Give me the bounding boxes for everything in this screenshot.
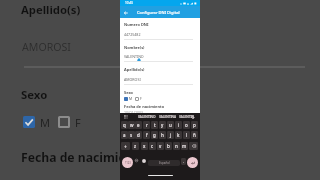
staticText: f (146, 132, 148, 138)
button[interactable]: x (141, 142, 148, 150)
button[interactable]: g (151, 131, 158, 139)
staticText: Nombre(s) (124, 45, 145, 50)
button[interactable]: p (191, 121, 198, 129)
staticText: . (183, 159, 184, 164)
staticText: j (170, 132, 172, 138)
button[interactable]: o (183, 121, 190, 129)
staticText: Fecha de nacimiento (21, 149, 147, 166)
staticText: AMOROSI (22, 40, 71, 54)
staticText: ñ (193, 132, 196, 138)
staticText: F (75, 115, 81, 130)
button[interactable]: Key (121, 142, 130, 150)
button[interactable]: d (135, 131, 142, 139)
staticText: d (137, 132, 140, 138)
button[interactable]: b (165, 142, 172, 150)
button[interactable]: Symbols (122, 157, 133, 168)
staticText: Sexo (124, 90, 133, 95)
staticText: VALENTINA (159, 115, 176, 119)
button[interactable]: v (157, 142, 164, 150)
button[interactable]: a (121, 131, 128, 139)
staticText: i (178, 122, 180, 128)
button[interactable]: j (167, 131, 174, 139)
button[interactable]: n (173, 142, 180, 150)
staticText: Apellido(s) (21, 2, 81, 17)
button[interactable]: Masculino (124, 97, 128, 101)
staticText: Fecha de nacimiento (124, 104, 165, 109)
button[interactable]: VALENTIN (171, 113, 201, 121)
button[interactable]: Emoji (141, 158, 146, 163)
staticText: z (134, 143, 137, 149)
button[interactable]: VALENTINA (150, 113, 185, 121)
staticText: n (175, 143, 178, 149)
button[interactable]: s (128, 131, 135, 139)
staticText: 10:45 (125, 1, 134, 5)
button[interactable]: h (159, 131, 166, 139)
staticText: p (193, 122, 196, 128)
staticText: u (169, 122, 172, 128)
button[interactable]: r (143, 121, 150, 129)
button[interactable]: Change language (134, 158, 139, 163)
button[interactable]: u (167, 121, 174, 129)
button[interactable]: c (149, 142, 156, 150)
staticText: Apellido(s) (124, 67, 145, 72)
staticText: VALENTINO (138, 115, 156, 119)
staticText: M (40, 115, 50, 130)
staticText: x (143, 143, 146, 149)
button[interactable]: t (151, 121, 158, 129)
staticText: VALENTINO (124, 54, 144, 59)
button[interactable]: Femenino (135, 97, 139, 101)
staticText: VALENTIN (179, 115, 194, 119)
button[interactable]: Back (122, 9, 129, 16)
staticText: g (153, 132, 156, 138)
staticText: Numero DNI (124, 22, 149, 27)
button[interactable]: m (181, 142, 188, 150)
staticText: AMOROSI (124, 77, 141, 82)
staticText: r (146, 122, 148, 128)
staticText: Sexo (21, 87, 48, 103)
button[interactable]: VALENTINO (130, 113, 163, 121)
button[interactable]: z (132, 142, 139, 150)
staticText: h (161, 132, 164, 138)
button[interactable]: e (135, 121, 142, 129)
button[interactable]: f (143, 131, 150, 139)
staticText: v (159, 143, 162, 149)
button[interactable]: Español (148, 160, 180, 166)
button[interactable]: y (159, 121, 166, 129)
button[interactable]: w (128, 121, 135, 129)
staticText: k (177, 132, 180, 138)
staticText: ?123 (125, 161, 131, 165)
staticText: l (186, 132, 188, 138)
button[interactable]: Enter (187, 157, 198, 168)
button[interactable]: q (121, 121, 128, 129)
button[interactable]: ñ (191, 131, 198, 139)
staticText: 10/01/2003 (124, 110, 144, 115)
button[interactable]: k (175, 131, 182, 139)
staticText: M (129, 96, 133, 101)
staticText: Configurar DNI Digital (137, 10, 180, 15)
staticText: y (161, 122, 164, 128)
button[interactable]: Key (189, 142, 198, 150)
staticText: o (185, 122, 188, 128)
button[interactable]: Femenino (58, 116, 70, 128)
staticText: m (182, 143, 187, 149)
staticText: w (130, 122, 134, 128)
staticText: e (137, 122, 140, 128)
staticText: s (130, 132, 133, 138)
button[interactable]: Period (181, 158, 186, 165)
staticText: q (123, 122, 126, 128)
staticText: b (167, 143, 170, 149)
staticText: c (151, 143, 154, 149)
button[interactable]: Masculino (23, 116, 35, 128)
staticText: a (123, 132, 126, 138)
staticText: 44725482 (124, 32, 141, 37)
staticText: F (140, 96, 142, 101)
button[interactable]: l (183, 131, 190, 139)
staticText: Español (159, 161, 170, 165)
staticText: t (154, 122, 156, 128)
button[interactable]: i (175, 121, 182, 129)
